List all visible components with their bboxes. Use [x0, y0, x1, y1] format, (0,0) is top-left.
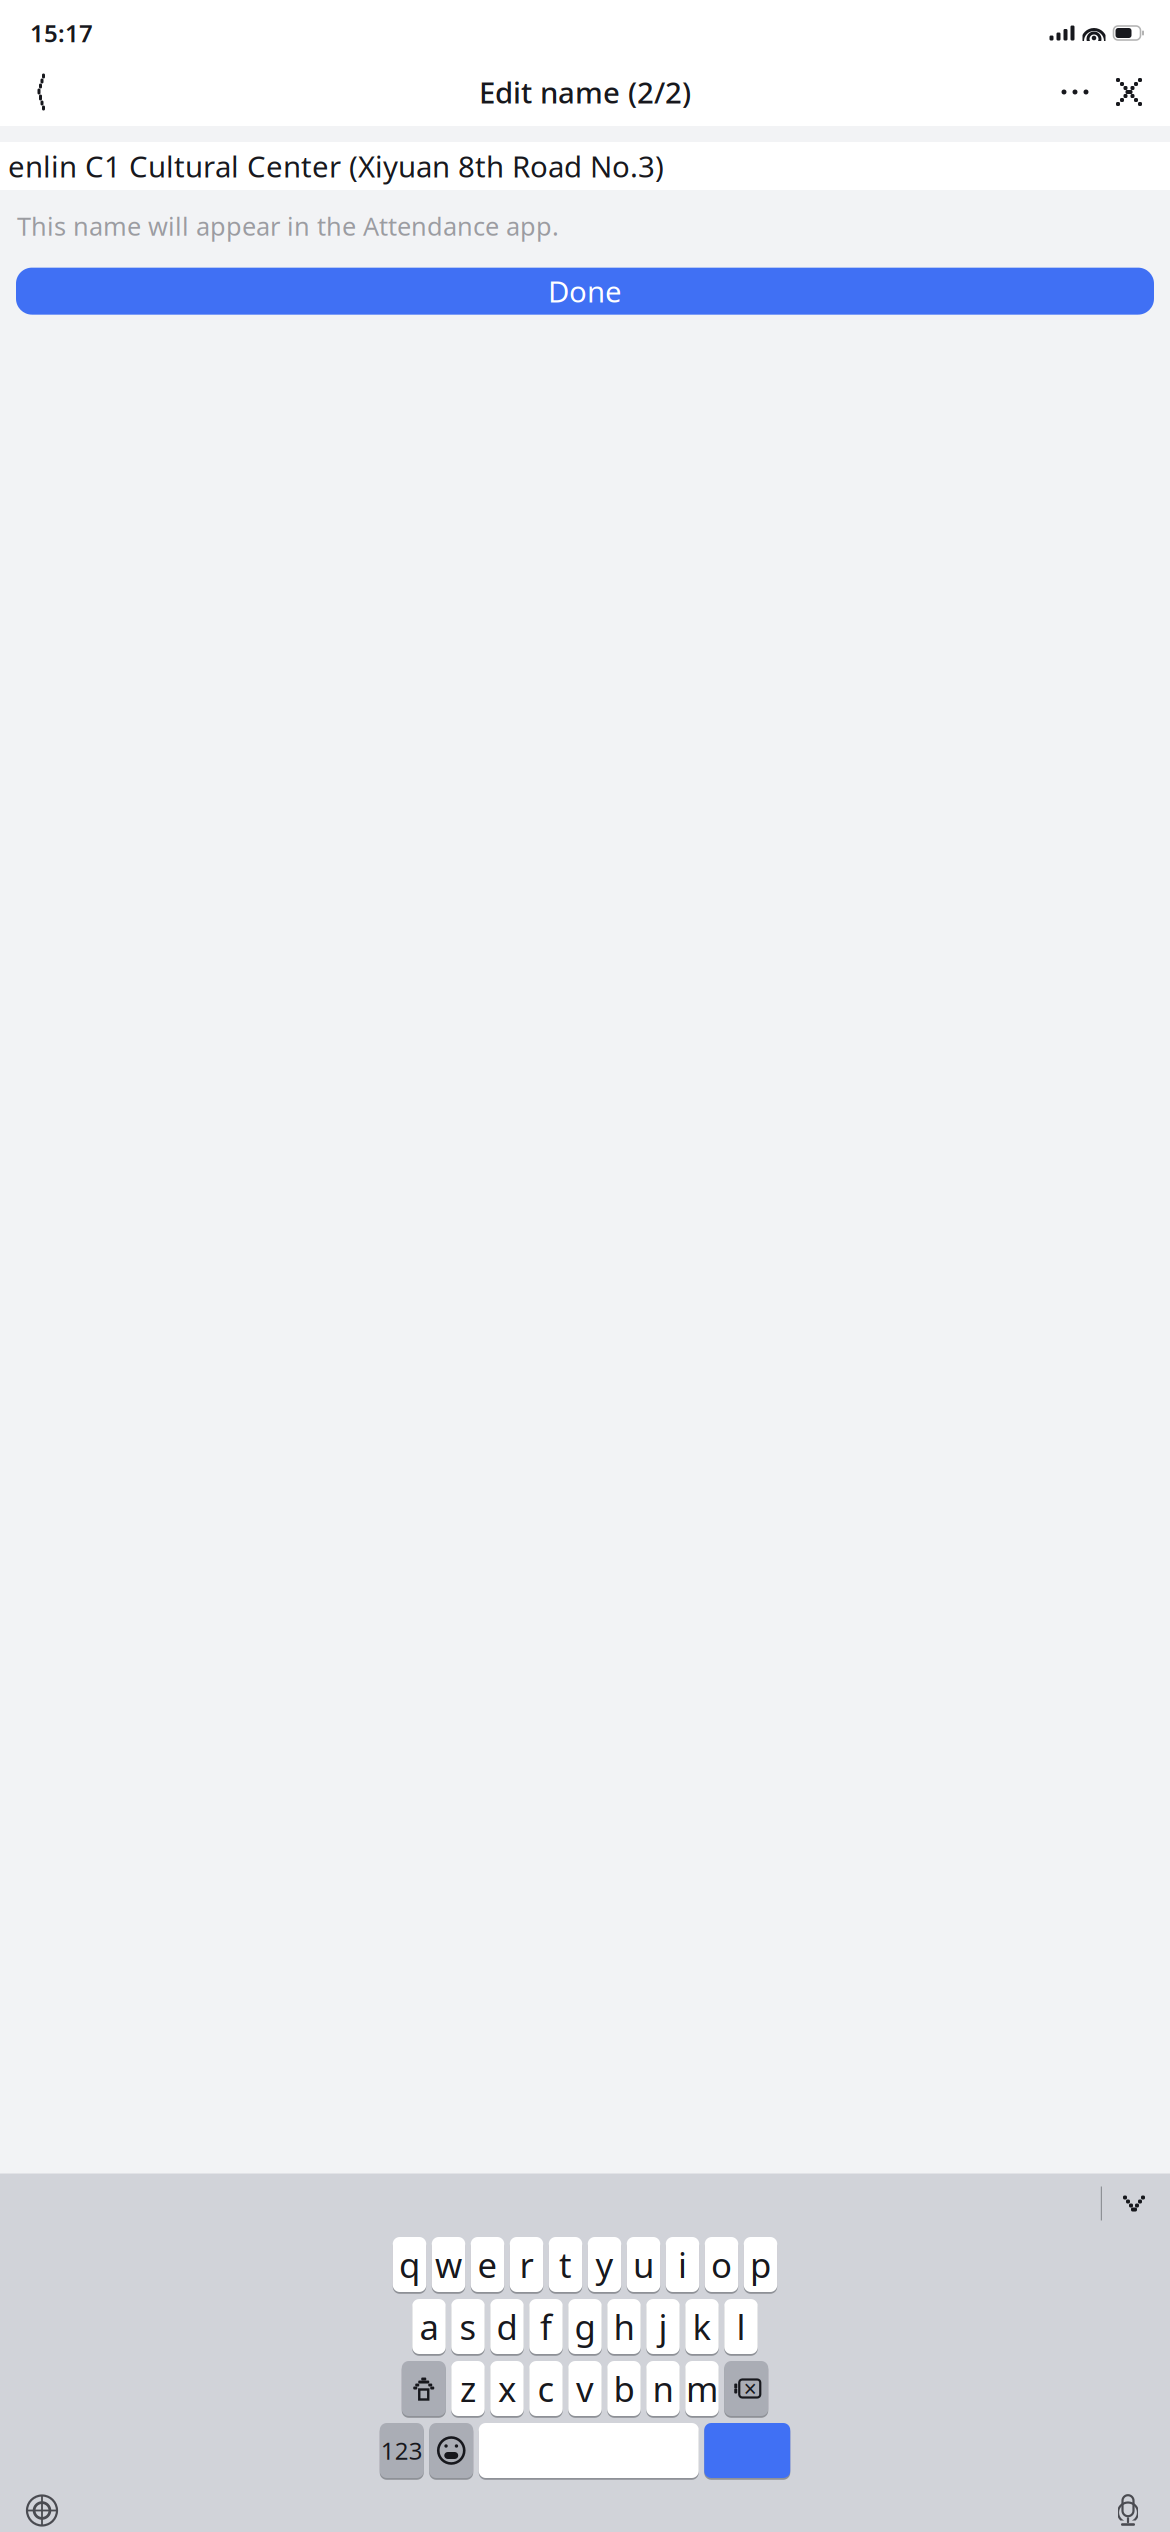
button[interactable]: t	[549, 2235, 582, 2293]
button[interactable]: Return	[704, 2421, 790, 2479]
button[interactable]: w	[432, 2235, 465, 2293]
button[interactable]: z	[451, 2359, 485, 2417]
button[interactable]: Back	[10, 65, 66, 119]
button[interactable]: c	[529, 2359, 563, 2417]
button[interactable]: u	[627, 2235, 660, 2293]
button[interactable]: j	[646, 2297, 680, 2355]
button[interactable]: d	[490, 2297, 524, 2355]
button[interactable]: k	[685, 2297, 719, 2355]
staticText: m	[686, 2365, 718, 2411]
staticText: q	[399, 2241, 420, 2287]
staticText: This name will appear in the Attendance …	[17, 209, 559, 243]
staticText: ×	[744, 2373, 757, 2403]
staticText: r	[519, 2241, 533, 2287]
button[interactable]: e	[471, 2235, 504, 2293]
staticText: s	[459, 2303, 476, 2349]
staticText: Edit name (2/2)	[479, 72, 691, 111]
staticText: o	[711, 2241, 732, 2287]
staticText: c	[537, 2365, 554, 2411]
staticText: h	[613, 2303, 634, 2349]
button[interactable]: q	[393, 2235, 426, 2293]
button[interactable]: x	[490, 2359, 524, 2417]
staticText: w	[435, 2241, 462, 2287]
button[interactable]: v	[568, 2359, 602, 2417]
staticText: 15:17	[30, 17, 93, 49]
button[interactable]: Next keyboard	[12, 2485, 72, 2532]
button[interactable]: More options	[1048, 65, 1102, 119]
staticText: Done	[548, 272, 622, 311]
staticText: v	[576, 2365, 594, 2411]
button[interactable]: p	[744, 2235, 777, 2293]
button[interactable]: s	[451, 2297, 485, 2355]
staticText: 123	[381, 2435, 423, 2466]
staticText: g	[574, 2303, 595, 2349]
button[interactable]: g	[568, 2297, 602, 2355]
staticText: e	[477, 2241, 497, 2287]
button[interactable]: b	[607, 2359, 641, 2417]
button[interactable]: a	[412, 2297, 446, 2355]
staticText: l	[736, 2303, 745, 2349]
button[interactable]: h	[607, 2297, 641, 2355]
staticText: x	[498, 2365, 516, 2411]
staticText: b	[613, 2365, 634, 2411]
button[interactable]: Close	[1102, 65, 1156, 119]
button[interactable]: f	[529, 2297, 563, 2355]
button[interactable]: Done	[16, 268, 1154, 315]
staticText: f	[540, 2303, 552, 2349]
button[interactable]: Delete	[724, 2359, 768, 2417]
button[interactable]: Shift	[402, 2359, 446, 2417]
staticText: u	[633, 2241, 654, 2287]
button[interactable]: Space	[479, 2421, 699, 2479]
button[interactable]: enlin C1 Cultural Center (Xiyuan 8th Roa…	[0, 142, 1170, 190]
staticText: i	[678, 2241, 687, 2287]
button[interactable]: i	[666, 2235, 699, 2293]
staticText: p	[750, 2241, 771, 2287]
button[interactable]: Hide keyboard	[1102, 2179, 1166, 2227]
button[interactable]: o	[705, 2235, 738, 2293]
button[interactable]: l	[724, 2297, 758, 2355]
staticText: a	[419, 2303, 438, 2349]
button[interactable]: y	[588, 2235, 621, 2293]
button[interactable]: Dictation	[1098, 2485, 1158, 2532]
button[interactable]: Emoji	[429, 2421, 473, 2479]
button[interactable]: Numbers	[380, 2421, 424, 2479]
button[interactable]: r	[510, 2235, 543, 2293]
staticText: n	[652, 2365, 673, 2411]
staticText: d	[496, 2303, 517, 2349]
button[interactable]: n	[646, 2359, 680, 2417]
staticText: j	[658, 2303, 667, 2349]
staticText: y	[595, 2241, 613, 2287]
staticText: enlin C1 Cultural Center (Xiyuan 8th Roa…	[8, 146, 664, 185]
button[interactable]: m	[685, 2359, 719, 2417]
staticText: k	[692, 2303, 711, 2349]
staticText: z	[460, 2365, 476, 2411]
staticText: t	[559, 2241, 572, 2287]
